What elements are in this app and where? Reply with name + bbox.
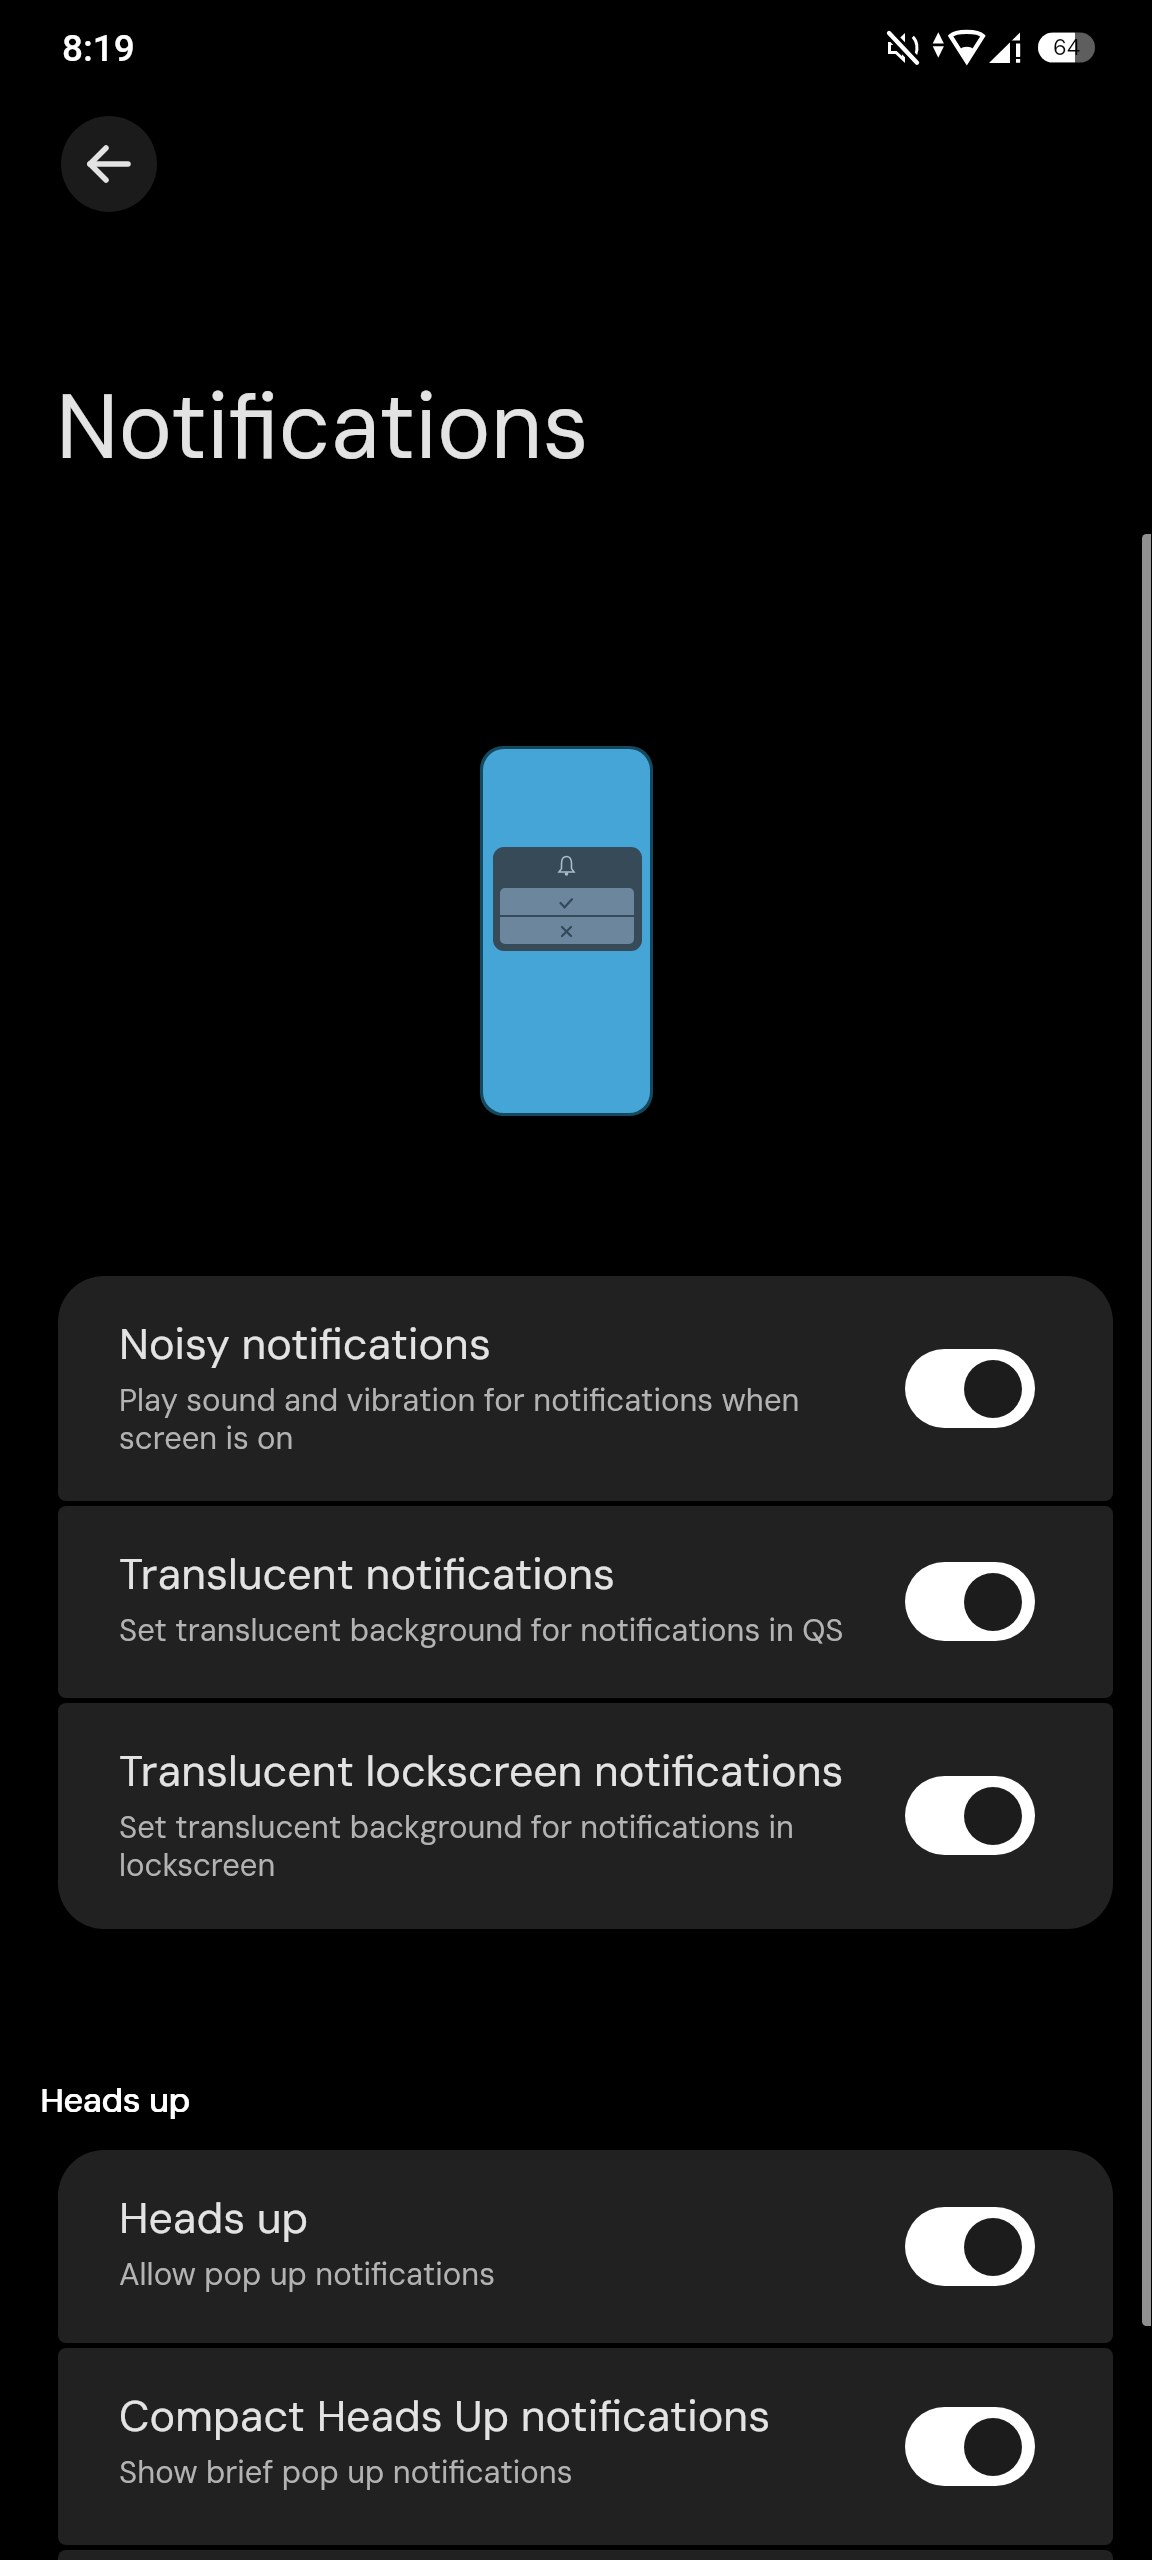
button[interactable]: Translucent notifications [58,1506,1113,1698]
staticText: Notifications [56,369,589,486]
staticText: Heads up [41,2078,191,2122]
button[interactable]: Toggle on [905,1562,1035,1641]
staticText: Heads up [119,2190,309,2246]
staticText: Play sound and vibration for notificatio… [119,1380,879,1459]
button[interactable]: Toggle on [905,1776,1035,1855]
staticText: Set translucent background for notificat… [119,1610,844,1650]
button[interactable]: Noisy notifications [58,1276,1113,1501]
staticText: Noisy notifications [119,1316,491,1372]
staticText: Heads up [40,2078,190,2122]
button[interactable]: Back [61,116,157,212]
button[interactable]: Toggle on [905,2207,1035,2286]
button[interactable]: Compact Heads Up notifications [58,2348,1113,2545]
staticText: 8:19 [62,27,135,70]
staticText: 64 [1053,33,1081,62]
staticText: Show brief pop up notifications [119,2452,573,2492]
staticText: Set translucent background for notificat… [119,1807,879,1886]
button[interactable]: Heads up [58,2150,1113,2343]
staticText: Allow pop up notifications [119,2254,496,2294]
button[interactable]: Toggle on [905,2407,1035,2486]
staticText: Translucent lockscreen notifications [119,1743,844,1799]
staticText: Translucent notifications [119,1546,615,1602]
button[interactable]: Toggle on [905,1349,1035,1428]
button[interactable]: Translucent lockscreen notifications [58,1703,1113,1929]
staticText: Compact Heads Up notifications [119,2388,771,2444]
